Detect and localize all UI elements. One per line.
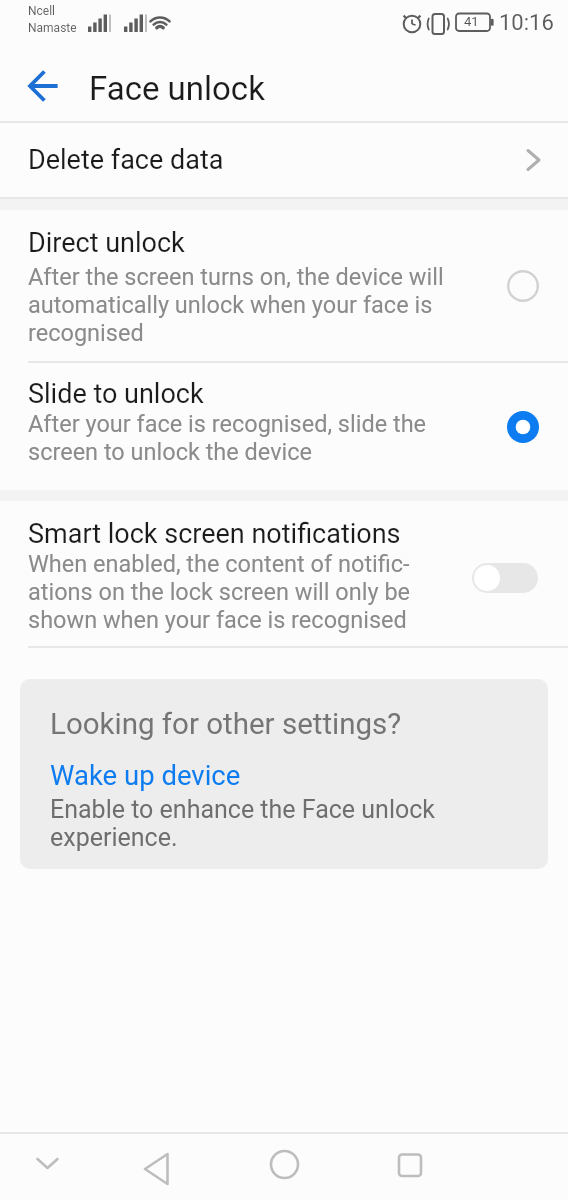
staticText: Enable to enhance the Face unlock experi… — [50, 795, 435, 852]
staticText: Slide to unlock — [28, 378, 204, 410]
staticText: 41 — [464, 14, 479, 29]
staticText: Face unlock — [89, 69, 265, 108]
staticText: When enabled, the content of notific- at… — [28, 550, 411, 634]
staticText: Delete face data — [28, 144, 224, 176]
staticText: Direct unlock — [28, 227, 185, 259]
button[interactable] — [26, 70, 60, 102]
staticText: Smart lock screen notifications — [28, 518, 401, 550]
button[interactable] — [472, 563, 538, 593]
staticText: Looking for other settings? — [50, 707, 402, 742]
button[interactable]: Slide to unlock — [0, 363, 568, 490]
button[interactable] — [392, 1146, 430, 1184]
staticText: 10:16 — [499, 10, 554, 36]
staticText: Ncell Namaste — [28, 4, 77, 35]
button[interactable] — [266, 1146, 304, 1184]
button[interactable] — [138, 1149, 176, 1187]
button[interactable]: Smart lock screen notifications — [0, 501, 568, 646]
button[interactable] — [30, 1146, 66, 1182]
staticText: After your face is recognised, slide the… — [28, 410, 427, 466]
staticText: Wake up device — [50, 759, 241, 791]
button[interactable]: Wake up device — [50, 759, 241, 791]
staticText: After the screen turns on, the device wi… — [28, 263, 444, 347]
button[interactable]: Delete face data — [0, 123, 568, 197]
button[interactable]: Direct unlock — [0, 210, 568, 361]
